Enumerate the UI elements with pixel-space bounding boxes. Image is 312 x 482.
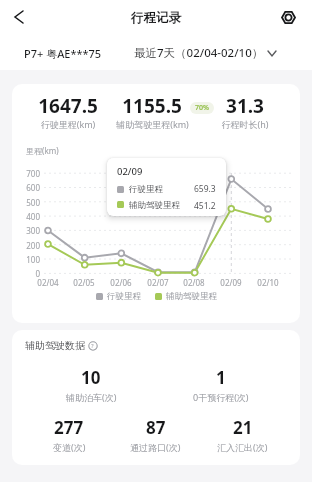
staticText: 汇入汇出(次) bbox=[217, 441, 268, 453]
staticText: 200 bbox=[14, 240, 40, 251]
staticText: 10 bbox=[81, 366, 101, 389]
staticText: 659.3 bbox=[194, 183, 216, 195]
staticText: 100 bbox=[14, 254, 40, 265]
button[interactable]: 辅助驾驶里程 bbox=[155, 291, 217, 302]
staticText: 辅助驾驶里程 bbox=[129, 200, 180, 209]
button[interactable] bbox=[274, 3, 302, 31]
staticText: 1647.5 bbox=[23, 93, 113, 119]
staticText: 变道(次) bbox=[53, 441, 86, 453]
staticText: 400 bbox=[14, 211, 40, 222]
button[interactable]: 87 bbox=[112, 416, 199, 453]
staticText: 02/06 bbox=[107, 277, 135, 288]
staticText: 辅助泊车(次) bbox=[66, 391, 117, 403]
staticText: 70% bbox=[195, 103, 209, 113]
button[interactable]: P7+ 粤AE***75 bbox=[16, 42, 110, 64]
staticText: 0干预行程(次) bbox=[193, 391, 249, 403]
staticText: 里程(km) bbox=[26, 145, 70, 156]
staticText: 02/04 bbox=[34, 277, 62, 288]
staticText: 0 bbox=[14, 268, 40, 279]
button[interactable]: 277 bbox=[26, 416, 112, 453]
staticText: 1155.5 bbox=[107, 93, 197, 119]
staticText: 21 bbox=[233, 416, 253, 439]
staticText: ? bbox=[91, 342, 94, 350]
staticText: 行程时长(h) bbox=[215, 118, 275, 130]
staticText: 行程记录 bbox=[0, 10, 312, 26]
button[interactable]: 1 bbox=[156, 366, 286, 403]
staticText: P7+ 粤AE***75 bbox=[24, 46, 102, 61]
staticText: 87 bbox=[146, 416, 166, 439]
button[interactable]: 21 bbox=[199, 416, 286, 453]
button[interactable]: 辅助驾驶数据 bbox=[25, 339, 101, 352]
staticText: 02/10 bbox=[254, 277, 282, 288]
staticText: 辅助驾驶数据 bbox=[25, 339, 85, 352]
staticText: 02/09 bbox=[217, 277, 245, 288]
staticText: 277 bbox=[54, 416, 84, 439]
button[interactable] bbox=[6, 4, 32, 30]
staticText: 600 bbox=[14, 182, 40, 193]
staticText: 最近7天（02/04-02/10） bbox=[134, 45, 264, 61]
staticText: 辅助驾驶里程(km) bbox=[100, 118, 205, 130]
button[interactable]: 最近7天（02/04-02/10） bbox=[134, 42, 276, 64]
staticText: 700 bbox=[14, 168, 40, 179]
staticText: 通过路口(次) bbox=[130, 441, 181, 453]
button[interactable]: 10 bbox=[26, 366, 156, 403]
staticText: 02/08 bbox=[180, 277, 208, 288]
staticText: 300 bbox=[14, 225, 40, 236]
staticText: 辅助驾驶里程 bbox=[166, 291, 217, 302]
staticText: 500 bbox=[14, 197, 40, 208]
staticText: 02/09 bbox=[117, 165, 143, 178]
button[interactable]: 行驶里程 bbox=[96, 291, 141, 302]
staticText: 1 bbox=[216, 366, 226, 389]
staticText: 31.3 bbox=[215, 93, 275, 119]
staticText: 451.2 bbox=[194, 200, 216, 209]
staticText: 行驶里程 bbox=[129, 184, 163, 195]
staticText: 02/05 bbox=[70, 277, 98, 288]
staticText: 行驶里程(km) bbox=[23, 118, 113, 130]
staticText: 02/07 bbox=[144, 277, 172, 288]
staticText: 行驶里程 bbox=[107, 291, 141, 302]
